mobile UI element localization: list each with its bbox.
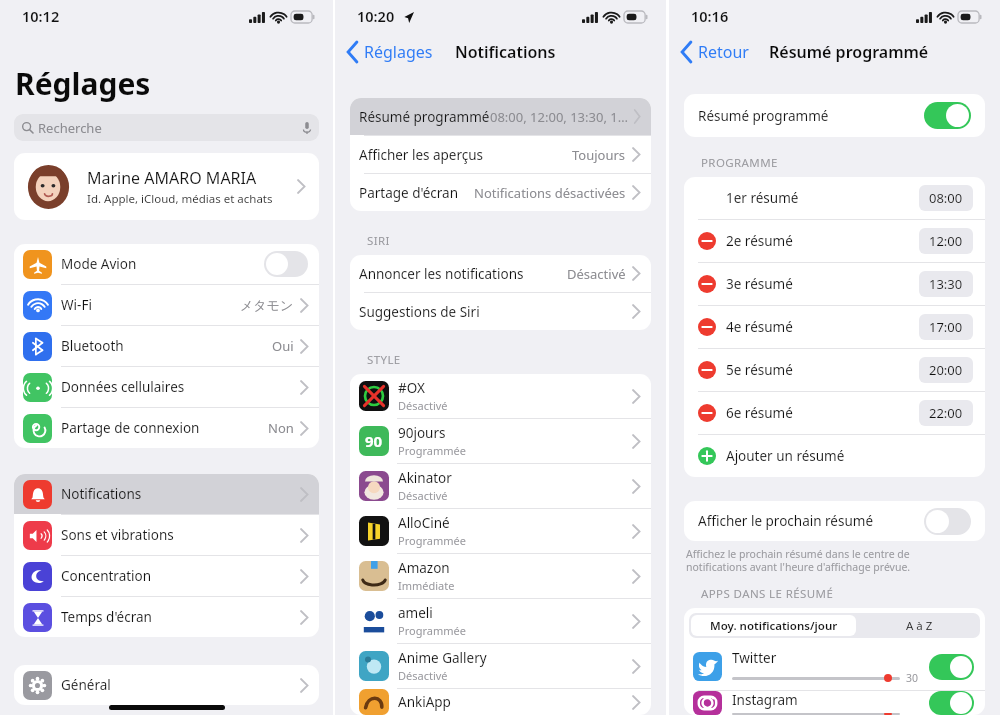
button[interactable]: A à Z [858,613,980,638]
button[interactable]: 17:00 [919,314,973,340]
staticText: Immédiate [398,578,455,593]
staticText: Anime Gallery [398,649,487,667]
staticText: SIRI [367,233,390,249]
button[interactable]: 20:00 [919,357,973,383]
staticText: AnkiApp [398,693,451,711]
button[interactable]: Partage de connexion [14,408,319,448]
button[interactable]: Données cellulaires [14,367,319,407]
staticText: Désactivé [567,265,626,283]
button[interactable]: Afficher les aperçus [350,136,651,173]
button[interactable]: Wi-Fi [14,285,319,325]
staticText: 90 [365,431,383,451]
button[interactable]: 1er résumé [684,177,985,219]
staticText: Temps d'écran [61,608,152,626]
button[interactable]: 22:00 [919,400,973,426]
button[interactable]: AnkiApp [350,689,651,715]
staticText: 08:00 [929,189,963,207]
button[interactable]: Notifications [14,474,319,514]
staticText: 90jours [398,424,446,442]
staticText: Sons et vibrations [61,526,174,544]
staticText: Non [268,419,294,437]
staticText: 1er résumé [726,189,799,207]
staticText: Ajouter un résumé [726,447,845,465]
staticText: Marine AMARO MARIA [87,167,257,189]
button[interactable]: Instagram [684,691,985,715]
staticText: Partage de connexion [61,419,200,437]
staticText: 20:00 [929,361,963,379]
staticText: Résumé programmé [359,108,490,126]
staticText: 22:00 [929,404,963,422]
button[interactable]: AlloCiné [350,509,651,553]
button[interactable]: Mode Avion [14,244,319,284]
button[interactable] [924,508,971,535]
button[interactable]: Temps d'écran [14,597,319,637]
staticText: STYLE [367,352,401,368]
staticText: Annoncer les notifications [359,265,524,283]
staticText: 10:20 [357,6,395,26]
staticText: Général [61,676,111,694]
staticText: ameli [398,604,433,622]
button[interactable]: Akinator [350,464,651,508]
button[interactable]: Anime Gallery [350,644,651,688]
staticText: 12:00 [929,232,963,250]
staticText: Partage d'écran [359,184,459,202]
button[interactable]: Partage d'écran [350,174,651,211]
button[interactable]: 12:00 [919,228,973,254]
staticText: Désactivé [398,488,448,503]
button[interactable]: 08:00 [919,185,973,211]
button[interactable] [929,691,974,715]
button[interactable]: 5e résumé [684,349,985,391]
button[interactable]: Bluetooth [14,326,319,366]
staticText: #OX [398,379,425,397]
button[interactable]: #OX [350,374,651,418]
staticText: Id. Apple, iCloud, médias et achats [87,191,273,207]
button[interactable]: ameli [350,599,651,643]
button[interactable]: 13:30 [919,271,973,297]
button[interactable]: Retour [669,37,757,67]
staticText: Notifications [61,485,142,503]
staticText: Résumé programmé [769,41,929,63]
button[interactable]: 2e résumé [684,220,985,262]
button[interactable] [264,251,308,277]
button[interactable]: Général [14,665,319,705]
staticText: Désactivé [398,668,448,683]
button[interactable]: 6e résumé [684,392,985,434]
staticText: Bluetooth [61,337,124,355]
button[interactable]: Moy. notifications/jour [691,615,856,636]
button[interactable]: Concentration [14,556,319,596]
staticText: 13:30 [929,275,963,293]
button[interactable]: Résumé programmé [684,94,985,137]
button[interactable]: Recherche [14,114,319,141]
staticText: Réglages [364,41,433,63]
button[interactable]: Annoncer les notifications [350,255,651,292]
staticText: PROGRAMME [701,155,778,171]
staticText: 5e résumé [726,361,793,379]
staticText: Programmée [398,533,466,548]
staticText: Toujours [572,146,626,164]
staticText: Afficher le prochain résumé [698,512,874,530]
staticText: Twitter [732,649,777,667]
button[interactable]: Sons et vibrations [14,515,319,555]
button[interactable]: 3e résumé [684,263,985,305]
button[interactable] [924,102,971,129]
button[interactable]: Suggestions de Siri [350,293,651,330]
button[interactable]: Résumé programmé [350,98,651,135]
staticText: Programmée [398,623,466,638]
staticText: Oui [272,337,294,355]
staticText: Notifications [455,41,556,63]
staticText: メタモン [240,297,294,313]
button[interactable]: Ajouter un résumé [684,435,985,477]
staticText: 10:12 [22,6,60,26]
button[interactable]: 90 [350,419,651,463]
button[interactable] [929,654,974,680]
button[interactable]: Twitter [684,643,985,690]
staticText: Notifications désactivées [474,184,626,202]
button[interactable]: 4e résumé [684,306,985,348]
staticText: Retour [698,41,749,63]
button[interactable]: Marine AMARO MARIA [14,153,319,220]
button[interactable]: Amazon [350,554,651,598]
button[interactable]: Réglages [335,37,441,67]
button[interactable]: Afficher le prochain résumé [684,501,985,541]
staticText: Désactivé [398,398,448,413]
staticText: A à Z [906,618,933,634]
